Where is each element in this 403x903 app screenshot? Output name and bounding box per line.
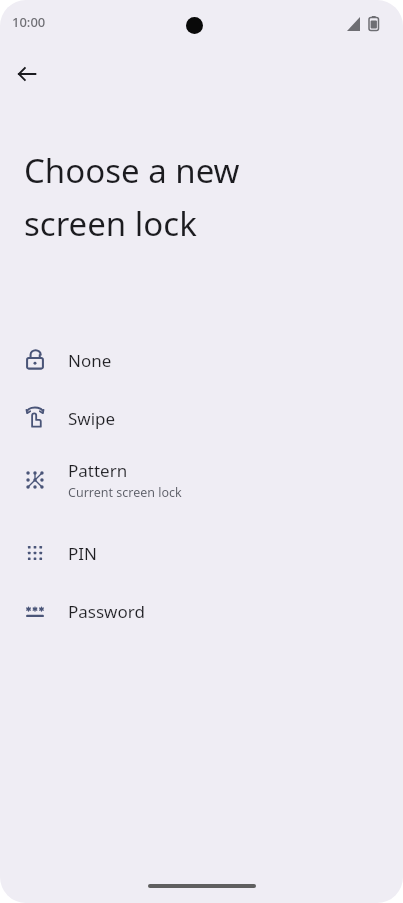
staticText: Password (68, 600, 145, 623)
staticText: Choose a new (24, 148, 240, 193)
staticText: screen lock (24, 201, 197, 246)
button[interactable]: Swipe (0, 394, 403, 442)
button[interactable]: Pattern (0, 452, 403, 508)
button[interactable]: None (0, 336, 403, 384)
button[interactable]: Back (6, 53, 48, 95)
button[interactable]: Password (0, 587, 403, 635)
staticText: Pattern (68, 459, 128, 482)
staticText: Current screen lock (68, 484, 182, 501)
staticText: 10:00 (12, 13, 46, 31)
button[interactable]: PIN (0, 529, 403, 577)
staticText: None (68, 349, 112, 372)
staticText: PIN (68, 542, 97, 565)
staticText: Swipe (68, 407, 116, 430)
